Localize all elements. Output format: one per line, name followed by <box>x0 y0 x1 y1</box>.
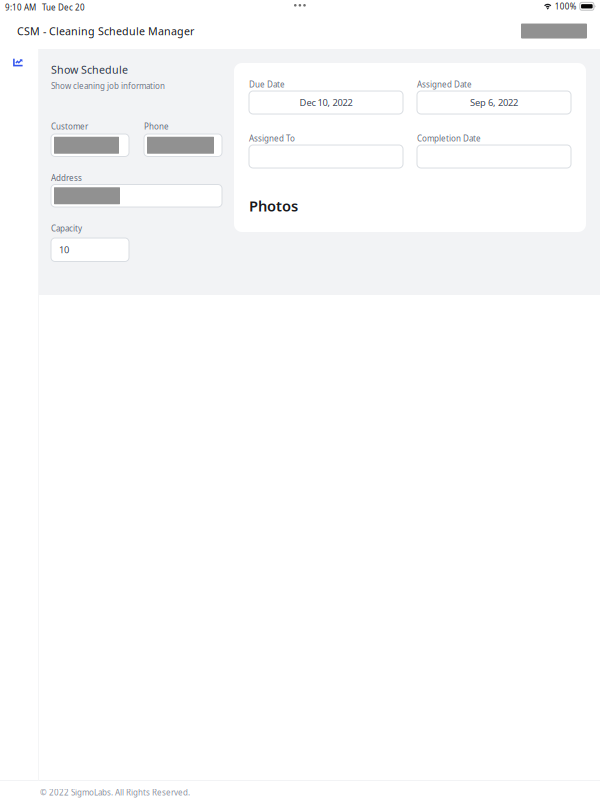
staticText: Photos <box>249 196 298 215</box>
staticText: Dec 10, 2022 <box>299 96 352 109</box>
button[interactable]: Schedules <box>0 49 38 67</box>
staticText: CSM - Cleaning Schedule Manager <box>17 24 194 38</box>
staticText: Customer <box>51 121 88 132</box>
staticText: Completion Date <box>417 133 481 144</box>
staticText: Assigned Date <box>417 79 472 90</box>
staticText: Assigned To <box>249 133 295 144</box>
staticText: Address <box>51 173 82 183</box>
staticText: Show cleaning job information <box>51 81 165 91</box>
staticText: Tue Dec 20 <box>42 2 85 13</box>
staticText: Capacity <box>51 223 82 234</box>
staticText: 10 <box>59 244 69 256</box>
staticText: Sep 6, 2022 <box>470 96 518 109</box>
staticText: Due Date <box>249 79 285 90</box>
staticText: © 2022 SigmoLabs. All Rights Reserved. <box>40 787 190 798</box>
staticText: 100% <box>555 1 577 12</box>
staticText: 9:10 AM <box>5 2 36 13</box>
staticText: Show Schedule <box>51 62 128 77</box>
staticText: Phone <box>144 121 169 132</box>
